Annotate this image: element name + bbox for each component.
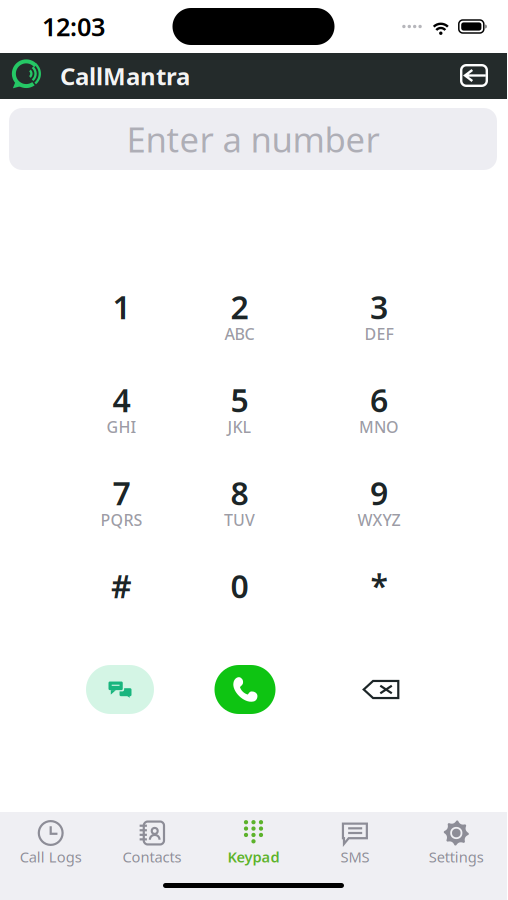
staticText: JKL [227, 416, 251, 437]
staticText: DEF [364, 323, 393, 344]
staticText: 9 [370, 472, 388, 514]
staticText: MNO [359, 416, 399, 437]
button[interactable]: Keypad [203, 812, 304, 866]
button[interactable]: 5 [181, 382, 298, 434]
button[interactable]: # [62, 568, 181, 620]
staticText: 4 [112, 379, 130, 421]
staticText: TUV [224, 509, 255, 530]
button[interactable]: SMS [304, 812, 406, 866]
staticText: 12:03 [42, 10, 105, 43]
staticText: Settings [429, 847, 484, 866]
staticText: Keypad [227, 847, 279, 866]
button[interactable]: 0 [181, 568, 298, 620]
staticText: 2 [230, 286, 248, 328]
button[interactable]: Call Logs [0, 812, 101, 866]
staticText: CallMantra [60, 60, 190, 92]
staticText: Call Logs [20, 847, 82, 866]
staticText: WXYZ [357, 509, 400, 530]
staticText: * [370, 565, 387, 607]
staticText: GHI [106, 416, 136, 437]
button[interactable]: Call [178, 663, 312, 716]
button[interactable]: 7 [62, 475, 181, 527]
button[interactable]: 2 [181, 289, 298, 341]
staticText: 3 [370, 286, 388, 328]
staticText: 7 [112, 472, 130, 514]
button[interactable]: Delete [312, 663, 450, 716]
button[interactable]: 6 [298, 382, 460, 434]
staticText: 8 [230, 472, 248, 514]
button[interactable]: 8 [181, 475, 298, 527]
staticText: 5 [230, 379, 248, 421]
button[interactable]: Log out [452, 53, 496, 99]
staticText: Contacts [123, 847, 182, 866]
staticText: PQRS [100, 509, 142, 530]
button[interactable]: 4 [62, 382, 181, 434]
staticText: ABC [224, 323, 254, 344]
button[interactable]: Contacts [101, 812, 203, 866]
staticText: 0 [230, 565, 248, 607]
button[interactable]: 9 [298, 475, 460, 527]
button[interactable]: * [298, 568, 460, 620]
button[interactable]: 1 [62, 289, 181, 341]
button[interactable]: Settings [406, 812, 507, 866]
button[interactable]: 3 [298, 289, 460, 341]
button[interactable]: Send message [62, 663, 178, 716]
staticText: 1 [112, 286, 130, 328]
staticText: SMS [340, 847, 369, 866]
staticText: # [111, 565, 132, 607]
staticText: 6 [370, 379, 388, 421]
staticText: Enter a number [126, 116, 379, 162]
